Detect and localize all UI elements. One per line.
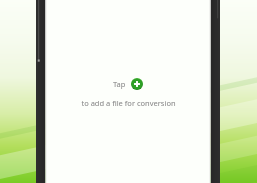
staticText: to add a file for conversion bbox=[81, 98, 176, 108]
button[interactable]: Tap bbox=[107, 76, 149, 92]
other: Add a file bbox=[131, 78, 143, 90]
staticText: Tap bbox=[113, 79, 126, 89]
